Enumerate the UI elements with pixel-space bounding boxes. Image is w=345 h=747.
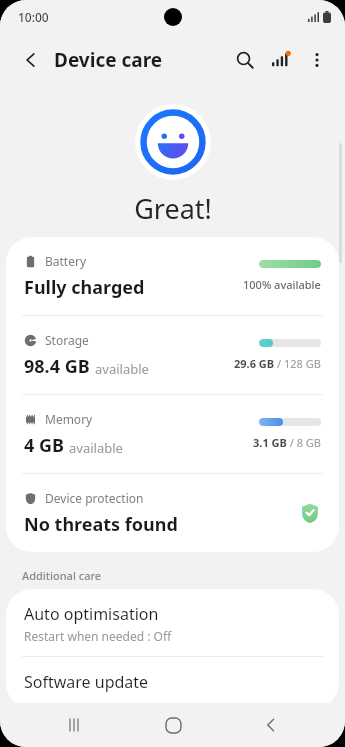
button[interactable]: Memory (6, 395, 339, 473)
button[interactable]: Usage statistics (263, 42, 299, 78)
button[interactable]: Battery (6, 237, 339, 315)
staticText: Auto optimisation (24, 603, 159, 625)
staticText: Memory (45, 411, 93, 427)
staticText: Device protection (45, 490, 144, 506)
staticText: 3.1 GB / 8 GB (253, 435, 321, 450)
staticText: Great! (134, 190, 212, 227)
button[interactable]: Back (14, 43, 48, 77)
button[interactable]: Recent apps (49, 703, 99, 747)
button[interactable]: Storage (6, 316, 339, 394)
staticText: 29.6 GB / 128 GB (234, 356, 321, 371)
button[interactable]: More options (299, 42, 335, 78)
staticText: No threats found (24, 512, 178, 537)
button[interactable]: Back (246, 703, 296, 747)
staticText: Battery (45, 253, 87, 269)
button[interactable]: Software update (6, 657, 339, 709)
staticText: Device care (54, 47, 163, 73)
button[interactable]: Auto optimisation (6, 589, 339, 656)
staticText: 100% available (243, 277, 321, 292)
staticText: available (95, 360, 149, 378)
staticText: Software update (24, 671, 149, 693)
staticText: Restart when needed : Off (24, 628, 172, 644)
staticText: Fully charged (24, 275, 145, 300)
button[interactable]: Device protection (6, 474, 339, 552)
staticText: Storage (45, 332, 89, 348)
button[interactable]: Search (227, 42, 263, 78)
button[interactable]: Home (148, 703, 198, 747)
staticText: 98.4 GB (24, 354, 90, 379)
staticText: 10:00 (18, 9, 49, 25)
staticText: Additional care (22, 568, 102, 583)
staticText: available (69, 439, 123, 457)
staticText: 4 GB (24, 433, 64, 458)
